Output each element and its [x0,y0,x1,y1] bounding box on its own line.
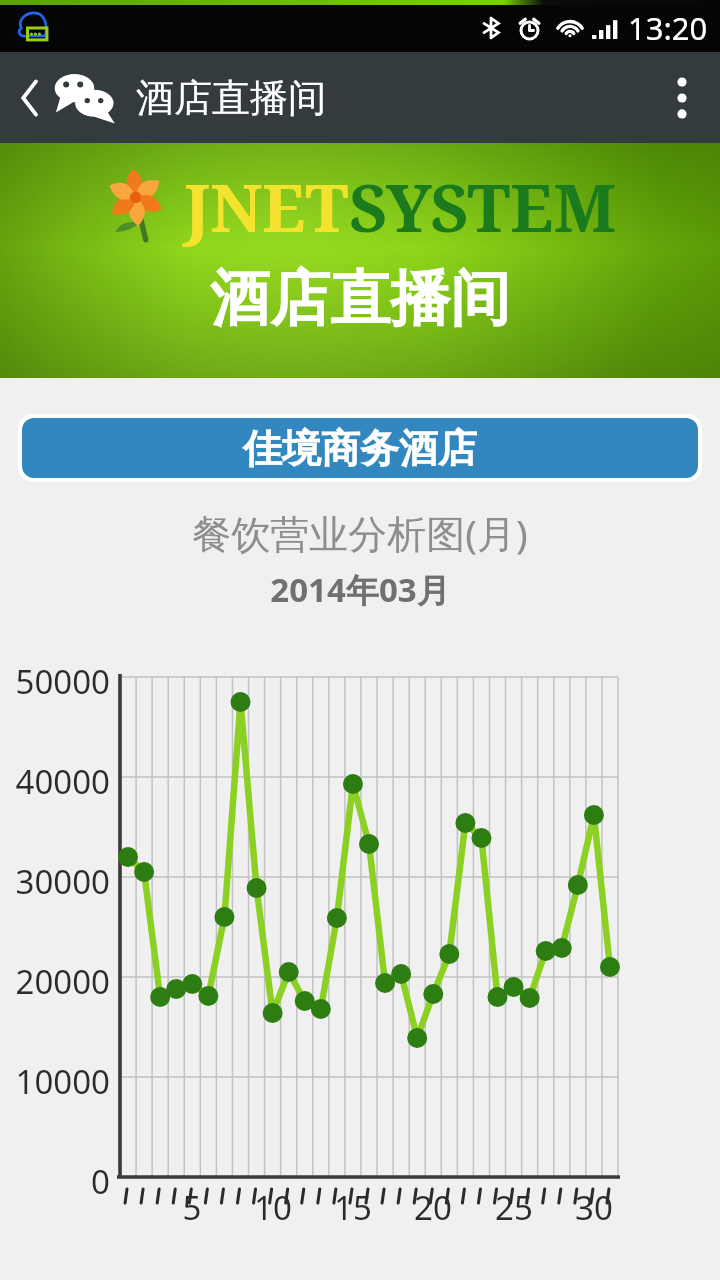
staticText: 30000 [0,859,110,904]
staticText: 13:20 [628,7,708,49]
staticText: 20000 [0,959,110,1004]
staticText: 酒店直播间 [136,74,326,122]
staticText: 15 [319,1185,387,1230]
staticText: 2014年03月 [0,567,720,612]
staticText: 50000 [0,659,110,704]
staticText: JNET [184,161,349,251]
other: Notification [16,10,52,46]
staticText: 40000 [0,759,110,804]
staticText: 酒店直播间 [210,261,510,337]
staticText: 25 [480,1185,548,1230]
staticText: 10 [239,1185,307,1230]
button[interactable]: Back [0,52,334,143]
staticText: 佳境商务酒店 [243,424,477,473]
button[interactable]: More options [644,52,720,143]
staticText: 餐饮营业分析图(月) [0,506,720,559]
button[interactable]: 佳境商务酒店 [22,418,698,478]
staticText: 20 [399,1185,467,1230]
staticText: SYSTEM [349,161,617,251]
staticText: 30 [560,1185,628,1230]
staticText: 0 [0,1159,110,1204]
staticText: 5 [158,1185,226,1230]
staticText: 10000 [0,1059,110,1104]
